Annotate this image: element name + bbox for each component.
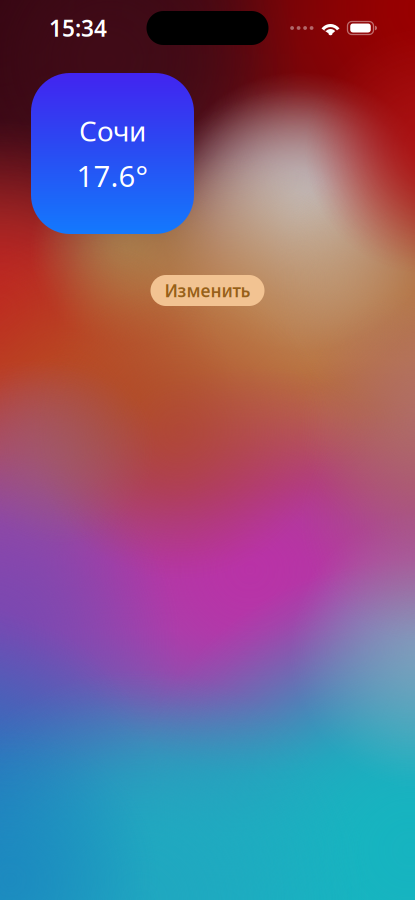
button[interactable]: Сочи (31, 73, 194, 234)
staticText: Сочи (79, 112, 146, 149)
staticText: Изменить (164, 279, 250, 302)
staticText: 15:34 (49, 13, 107, 43)
staticText: 17.6° (76, 156, 148, 195)
button[interactable]: Изменить (150, 275, 264, 306)
